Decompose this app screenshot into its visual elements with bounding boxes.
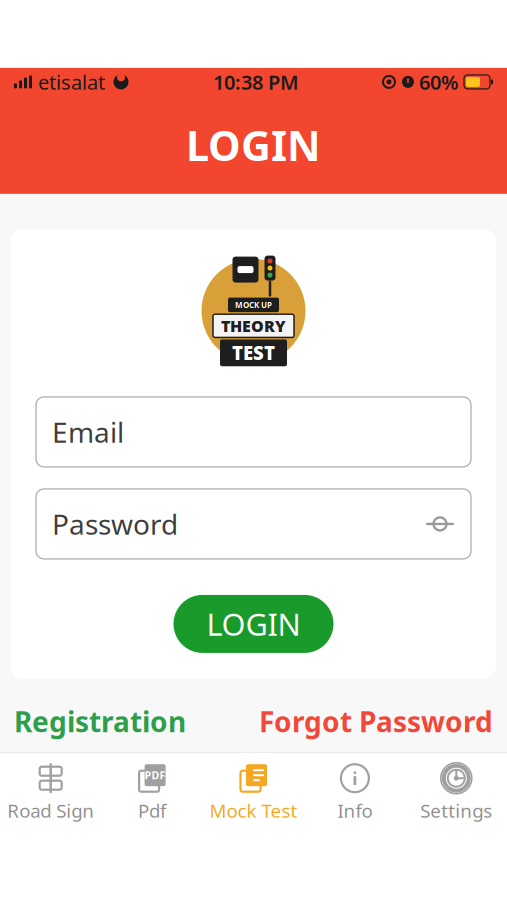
staticText: TEST (232, 340, 275, 365)
button[interactable]: LOGIN (173, 595, 333, 653)
staticText: Road Sign (7, 798, 94, 823)
staticText: Forgot Password (259, 703, 493, 740)
staticText: etisalat (38, 69, 105, 95)
staticText: LOGIN (186, 117, 321, 172)
staticText: MOCK UP (235, 300, 272, 310)
button[interactable]: Registration (14, 697, 186, 746)
staticText: THEORY (221, 315, 286, 336)
staticText: 10:38 PM (213, 69, 299, 95)
staticText: Mock Test (209, 798, 297, 823)
staticText: PDF (145, 768, 166, 782)
button[interactable]: Info (304, 753, 406, 834)
staticText: Pdf (138, 798, 166, 823)
button[interactable]: Road Sign (0, 753, 101, 834)
button[interactable]: PDF (101, 753, 203, 834)
staticText: Password (52, 505, 178, 542)
staticText: 60% (419, 69, 459, 95)
staticText: LOGIN (206, 603, 300, 644)
button[interactable]: Forgot Password (259, 697, 493, 746)
staticText: Email (52, 413, 124, 450)
button[interactable]: Mock Test (203, 753, 304, 834)
staticText: Registration (14, 703, 186, 740)
staticText: Settings (420, 798, 492, 823)
staticText: Info (337, 798, 372, 823)
button[interactable]: Settings (406, 753, 507, 834)
